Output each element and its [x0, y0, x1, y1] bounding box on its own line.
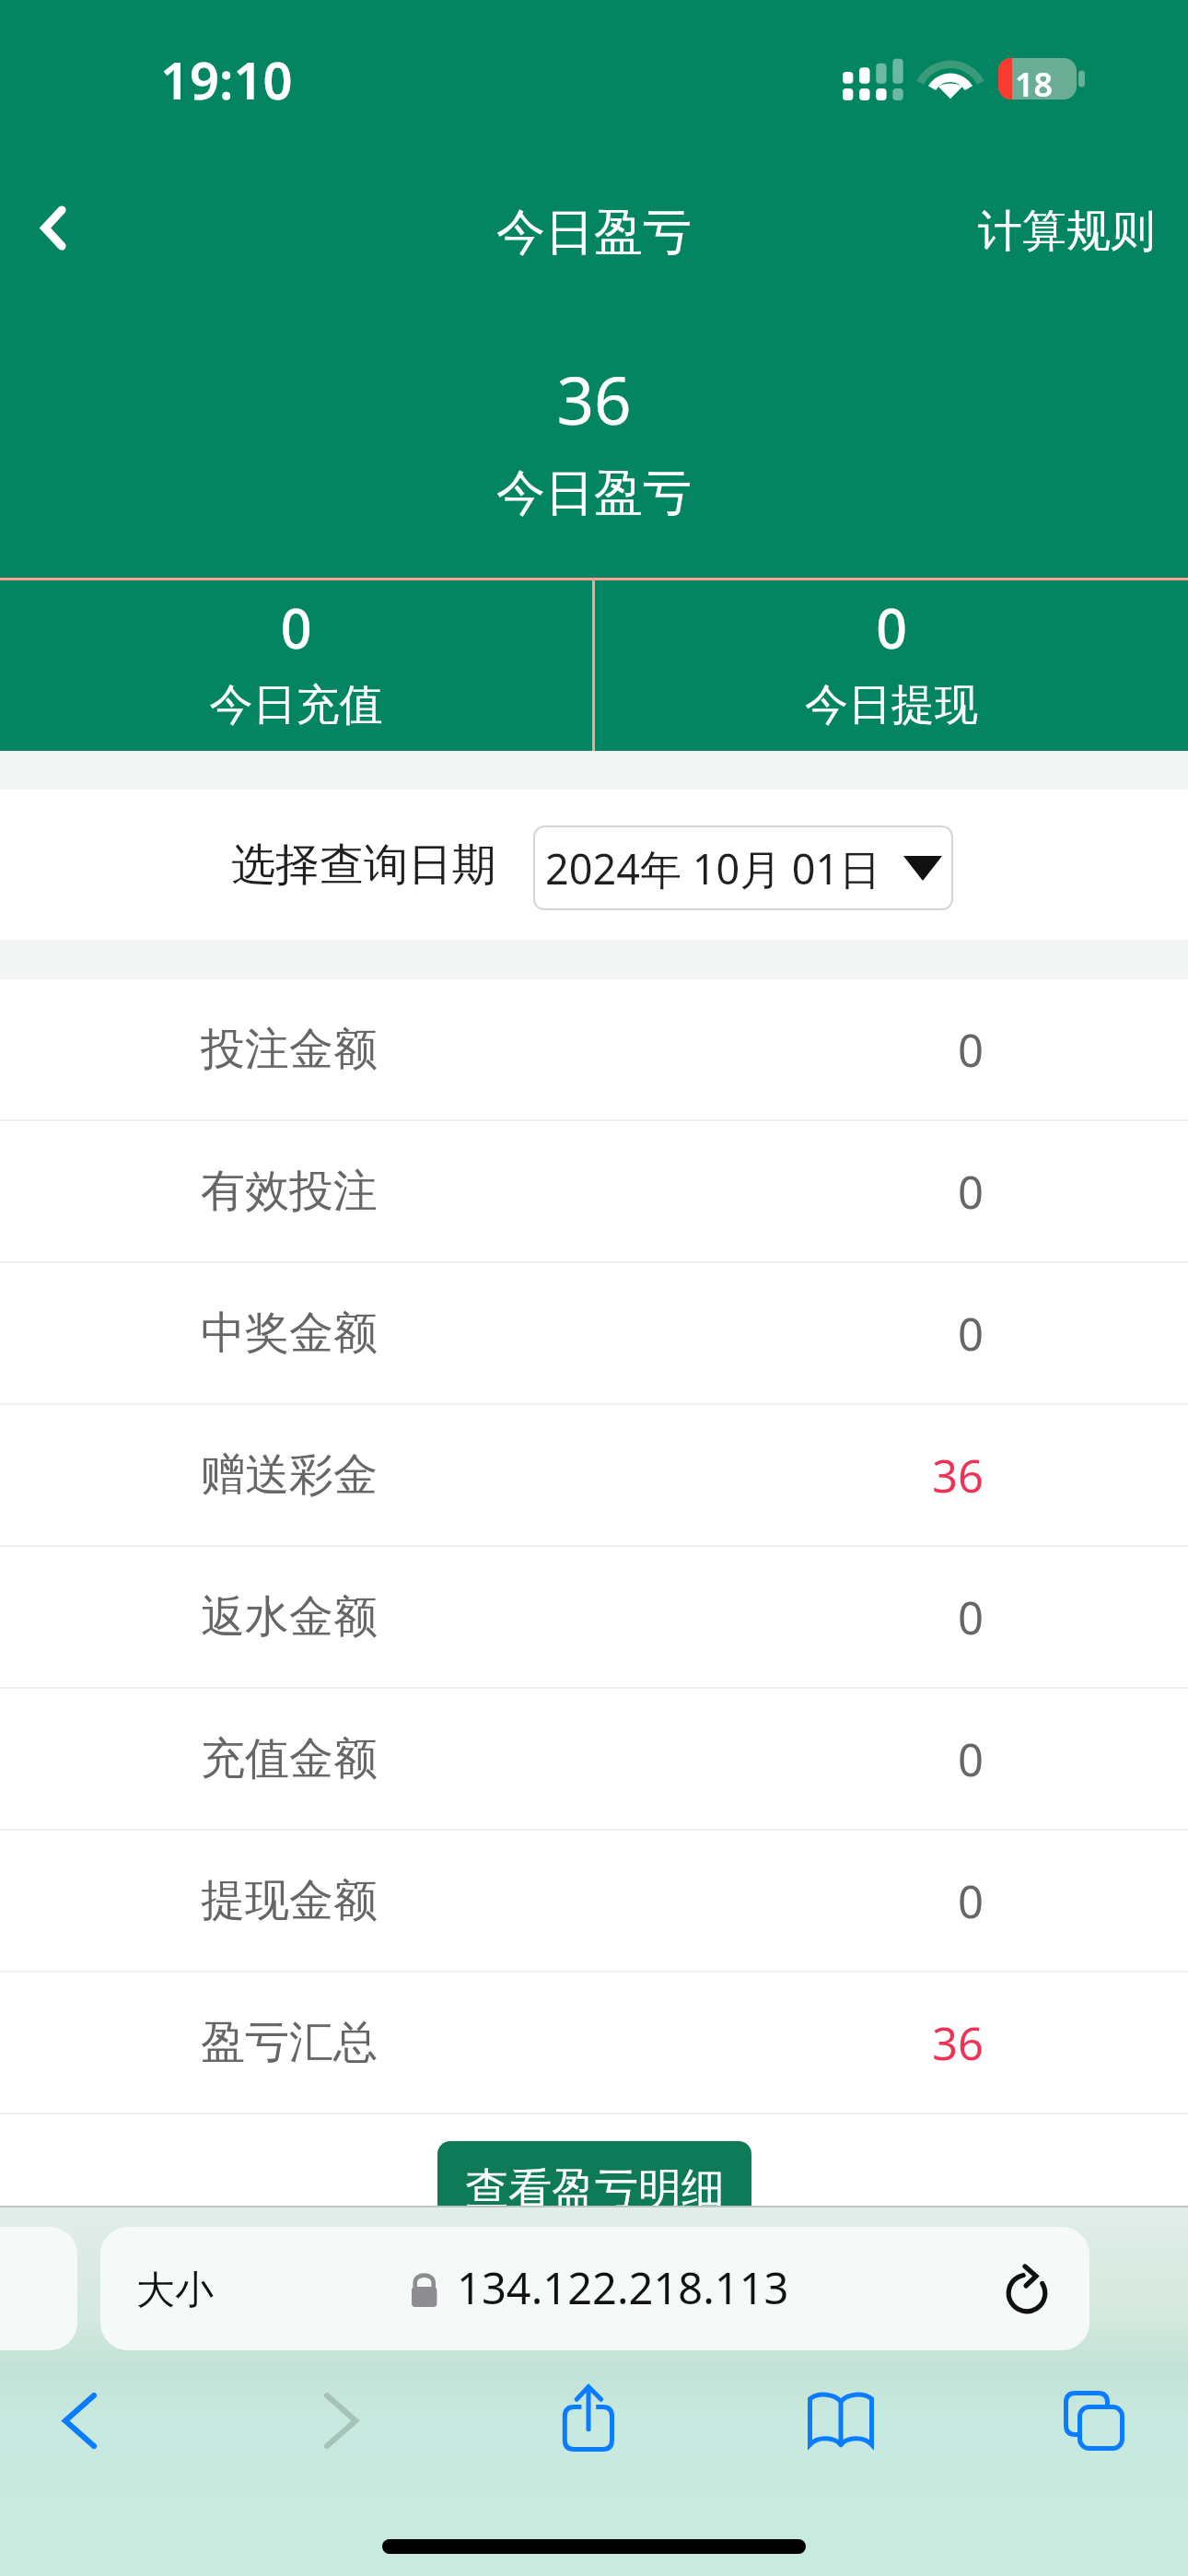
button[interactable]: 2024年 10月 01日 — [533, 825, 953, 910]
button[interactable]: Forward — [323, 2392, 359, 2450]
staticText: 36 — [932, 1445, 984, 1506]
staticText: 选择查询日期 — [231, 837, 496, 893]
staticText: 计算规则 — [978, 204, 1155, 259]
button[interactable]: 查看盈亏明细 — [437, 2141, 751, 2237]
staticText: 19:10 — [160, 44, 293, 114]
staticText: 0 — [595, 591, 1188, 664]
button[interactable]: Reload — [985, 2247, 1068, 2330]
button[interactable]: Bookmarks — [808, 2392, 874, 2447]
staticText: 0 — [958, 1870, 984, 1932]
staticText: 0 — [958, 1161, 984, 1223]
staticText: 提现金额 — [201, 1873, 378, 1928]
button[interactable]: 充值金额 — [0, 1689, 1188, 1829]
staticText: 今日提现 — [595, 678, 1188, 732]
staticText: 2024年 10月 01日 — [545, 840, 881, 896]
staticText: 盈亏汇总 — [201, 2015, 378, 2070]
button[interactable]: Tabs — [1064, 2391, 1126, 2453]
button[interactable]: 返水金额 — [0, 1547, 1188, 1687]
button[interactable]: 计算规则 — [961, 184, 1171, 278]
button[interactable]: 盈亏汇总 — [0, 1973, 1188, 2113]
staticText: 0 — [958, 1728, 984, 1790]
button[interactable]: 中奖金额 — [0, 1263, 1188, 1403]
staticText: 有效投注 — [201, 1164, 378, 1219]
button[interactable]: 投注金额 — [0, 979, 1188, 1119]
staticText: 查看盈亏明细 — [465, 2162, 725, 2217]
staticText: 0 — [958, 1587, 984, 1648]
staticText: 36 — [932, 2012, 984, 2074]
button[interactable]: 赠送彩金 — [0, 1405, 1188, 1545]
staticText: 投注金额 — [201, 1022, 378, 1077]
staticText: 0 — [0, 591, 592, 664]
staticText: 中奖金额 — [201, 1306, 378, 1361]
button[interactable]: Share — [560, 2384, 617, 2456]
staticText: 134.122.218.113 — [457, 2258, 789, 2317]
staticText: 今日盈亏 — [0, 463, 1188, 524]
staticText: 0 — [958, 1019, 984, 1081]
button[interactable]: 0 — [0, 580, 592, 654]
button[interactable]: 大小 — [100, 2227, 1089, 2350]
staticText: 返水金额 — [201, 1589, 378, 1645]
button[interactable]: Back — [62, 2392, 98, 2450]
staticText: 今日充值 — [0, 678, 592, 732]
staticText: 大小 — [136, 2266, 214, 2315]
staticText: 0 — [958, 1303, 984, 1364]
staticText: 充值金额 — [201, 1731, 378, 1786]
staticText: 18 — [1015, 62, 1054, 104]
staticText: 今日盈亏 — [0, 202, 1188, 263]
button[interactable]: 0 — [595, 580, 1188, 654]
button[interactable]: 提现金额 — [0, 1831, 1188, 1971]
button[interactable]: 有效投注 — [0, 1121, 1188, 1261]
staticText: 赠送彩金 — [201, 1447, 378, 1503]
staticText: 36 — [0, 355, 1188, 444]
button[interactable]: Back — [0, 177, 107, 280]
